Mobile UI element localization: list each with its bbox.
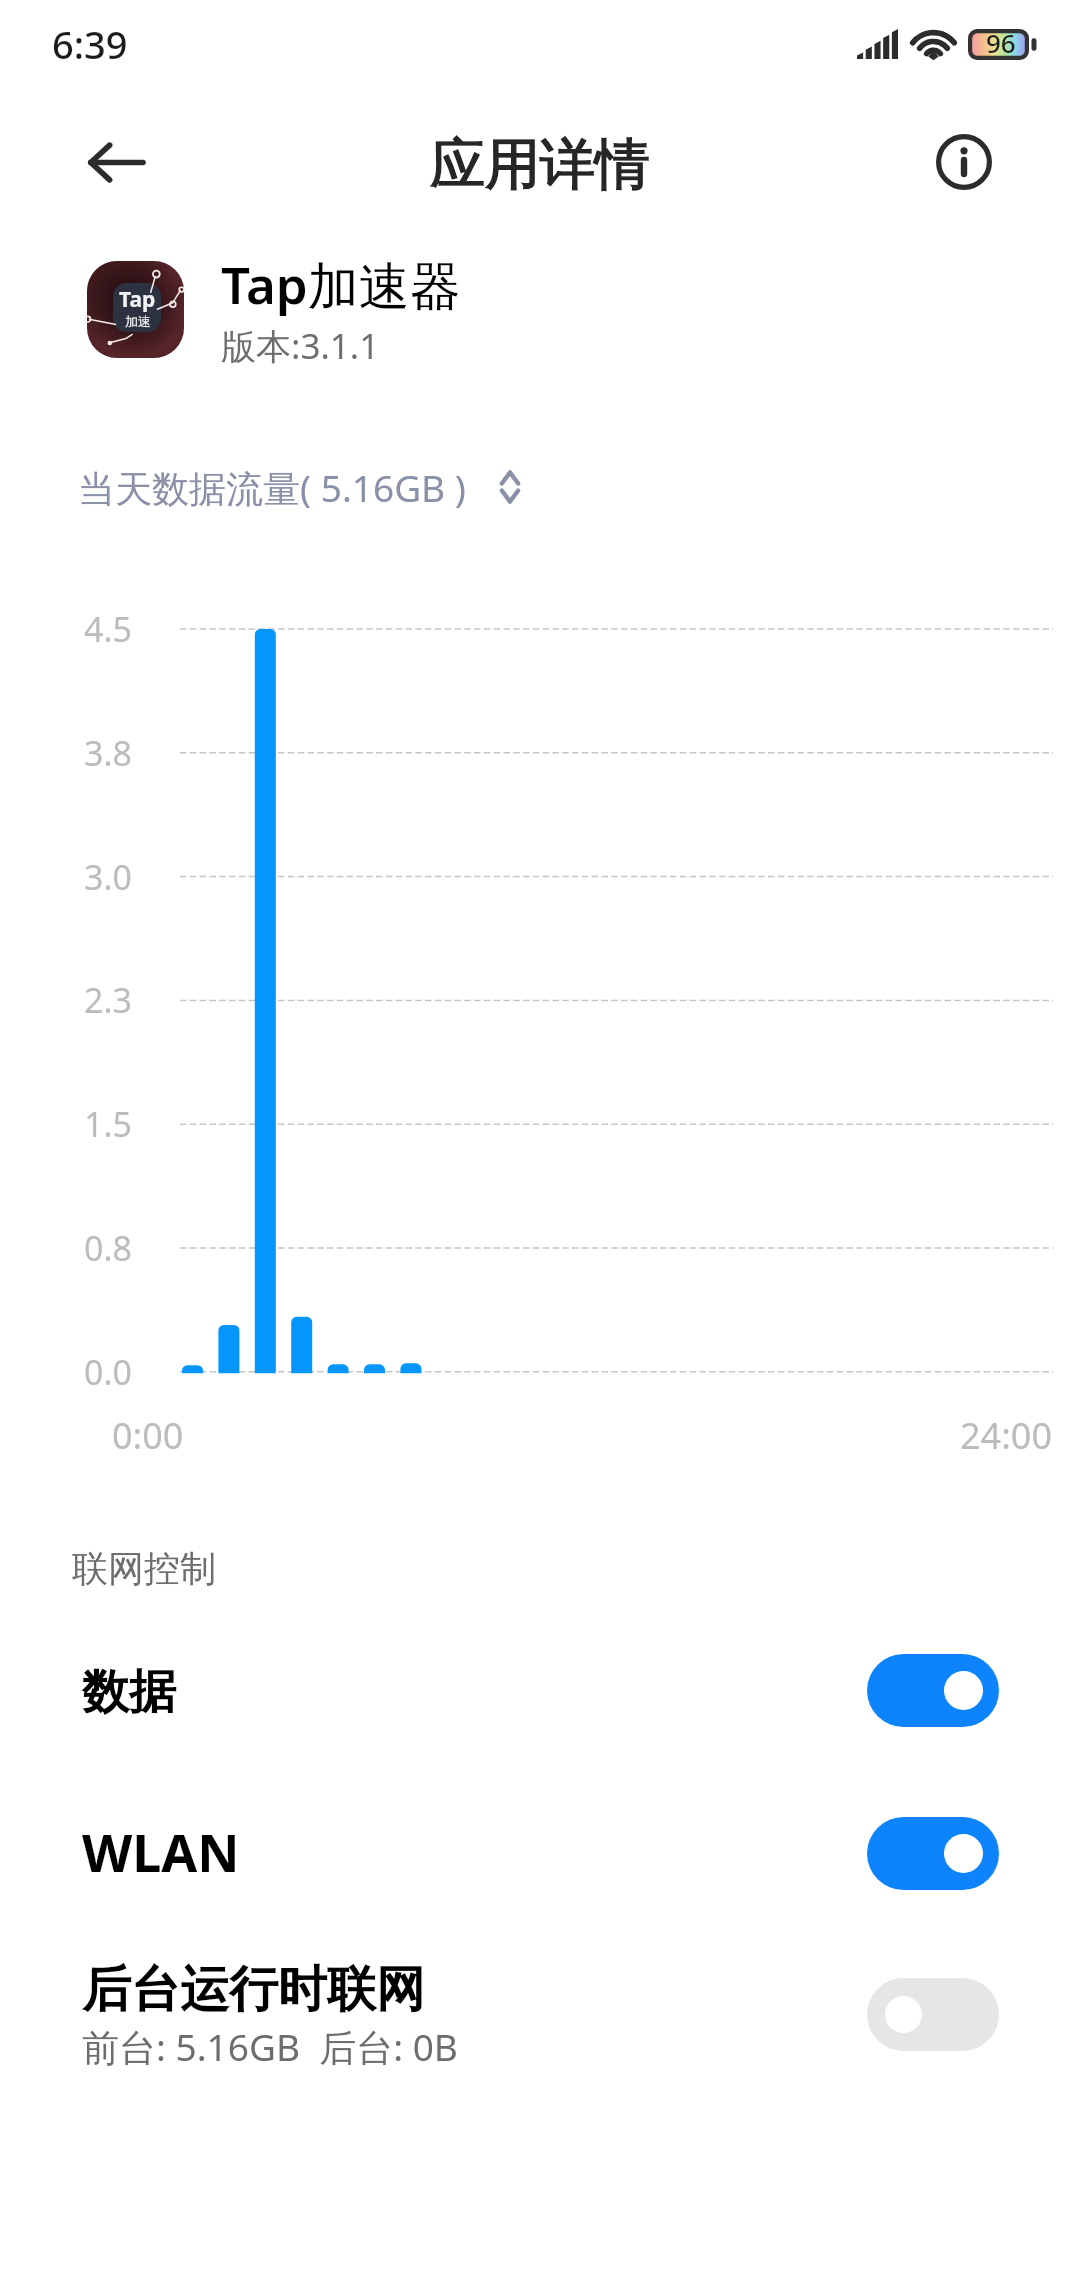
button[interactable]: Toggle 后台运行时联网 (867, 1978, 999, 2051)
button[interactable]: Toggle 数据 (867, 1654, 999, 1727)
button[interactable]: Toggle WLAN (867, 1817, 999, 1890)
staticText: 3.0 (84, 854, 133, 900)
staticText: 1.5 (84, 1101, 133, 1147)
staticText: 后台运行时联网 (82, 1959, 425, 2021)
staticText: 当天数据流量( 5.16GB ) (78, 462, 466, 513)
staticText: Tap加速器 (221, 249, 461, 319)
staticText: 版本:3.1.1 (221, 322, 380, 370)
staticText: 0:00 (112, 1411, 184, 1460)
staticText: 0.0 (84, 1349, 133, 1395)
staticText: 前台: 5.16GB 后台: 0B (82, 2021, 458, 2072)
staticText: Tap (119, 285, 156, 314)
button[interactable]: Info (920, 118, 1008, 206)
button[interactable]: WLAN (0, 1770, 1080, 1926)
staticText: 应用详情 (430, 130, 650, 199)
button[interactable]: 后台运行时联网 (0, 1927, 1080, 2083)
staticText: 加速 (125, 313, 151, 329)
staticText: 24:00 (960, 1411, 1053, 1460)
button[interactable]: Back (66, 118, 166, 206)
staticText: 96 (986, 25, 1016, 56)
button[interactable] (70, 452, 540, 524)
button[interactable]: 数据 (0, 1613, 1080, 1769)
staticText: 3.8 (84, 730, 133, 776)
staticText: 2.3 (84, 977, 133, 1023)
staticText: 应用详情 (430, 130, 650, 199)
staticText: 数据 (82, 1663, 176, 1722)
staticText: 0.8 (84, 1225, 133, 1271)
staticText: WLAN (82, 1816, 240, 1887)
staticText: 4.5 (84, 606, 133, 652)
staticText: 联网控制 (72, 1546, 216, 1591)
staticText: 6:39 (52, 18, 128, 70)
